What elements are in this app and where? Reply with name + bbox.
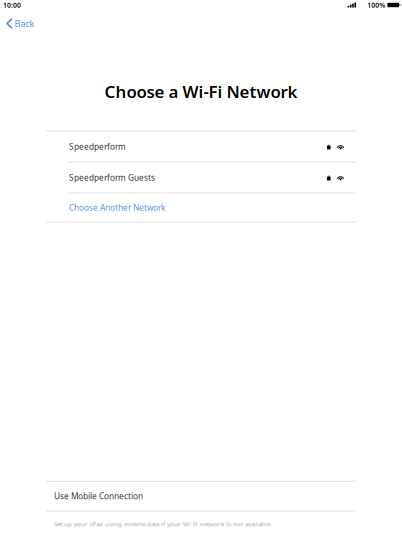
button[interactable]: Choose Another Network (0, 193, 402, 222)
staticText: Speedperform (69, 141, 126, 152)
staticText: 10:00 (3, 0, 21, 10)
button[interactable]: Use Mobile Connection (0, 482, 402, 510)
staticText: Choose Another Network (69, 202, 165, 213)
staticText: Use Mobile Connection (54, 490, 143, 502)
staticText: Choose a Wi-Fi Network (104, 80, 297, 103)
staticText: Set up your iPad using mobile data if yo… (54, 520, 272, 528)
button[interactable]: Speedperform (0, 131, 402, 161)
staticText: 100% (367, 0, 385, 10)
button[interactable]: Speedperform Guests (0, 162, 402, 192)
staticText: Speedperform Guests (69, 172, 155, 183)
button[interactable]: Back (0, 10, 41, 34)
staticText: Back (15, 17, 35, 30)
